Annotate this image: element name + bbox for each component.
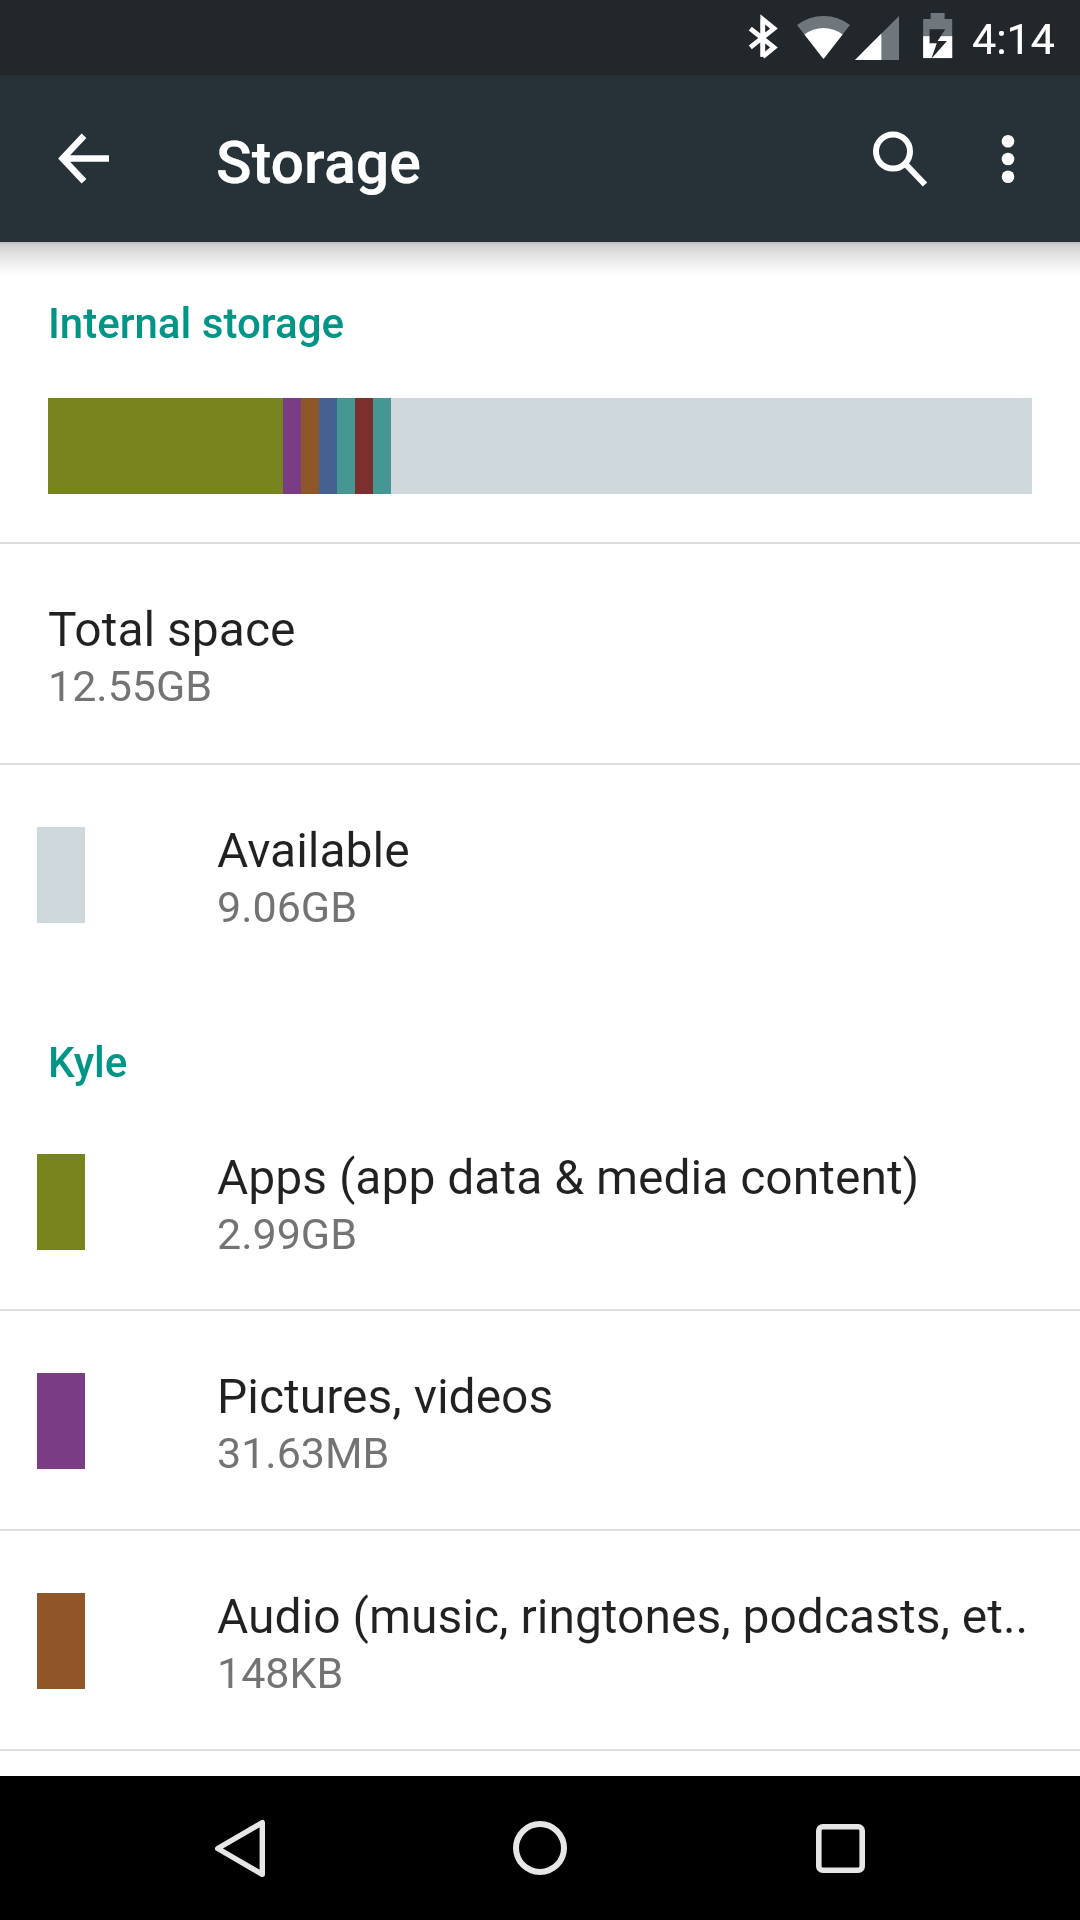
staticText: Apps (app data & media content) [217, 1149, 920, 1205]
staticText: Total space [48, 601, 296, 657]
staticText: 2.99GB [217, 1209, 357, 1259]
staticText: 9.06GB [217, 882, 357, 932]
button[interactable]: Apps (app data & media content) [0, 1091, 1080, 1310]
staticText: Kyle [48, 1038, 128, 1087]
button[interactable]: Search [851, 75, 947, 242]
button[interactable]: More options [960, 75, 1056, 242]
staticText: Internal storage [48, 299, 345, 348]
staticText: 31.63MB [217, 1428, 390, 1478]
button[interactable]: Total space [0, 543, 1080, 762]
staticText: Storage [216, 128, 421, 197]
button[interactable]: Home [475, 1776, 605, 1920]
staticText: Available [217, 822, 410, 878]
staticText: 4:14 [972, 14, 1055, 64]
button[interactable]: Available [0, 764, 1080, 983]
button[interactable]: Audio (music, ringtones, podcasts, et.. [0, 1530, 1080, 1749]
button[interactable]: Pictures, videos [0, 1310, 1080, 1529]
staticText: 148KB [217, 1648, 344, 1698]
button[interactable]: Recent apps [775, 1776, 905, 1920]
staticText: Audio (music, ringtones, podcasts, et.. [217, 1588, 1029, 1644]
button[interactable]: Back [175, 1776, 305, 1920]
button[interactable]: Navigate up [20, 75, 148, 242]
staticText: Pictures, videos [217, 1368, 554, 1424]
staticText: 12.55GB [48, 661, 213, 711]
